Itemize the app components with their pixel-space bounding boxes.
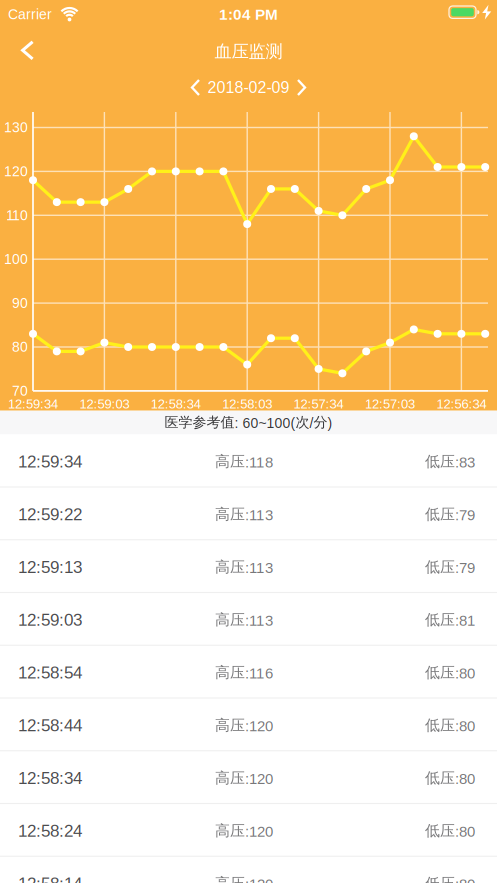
staticText: 110 [6, 207, 28, 223]
staticText: 1:04 PM [219, 6, 278, 23]
staticText: 高压:116 [215, 663, 273, 682]
staticText: 12:56:34 [436, 397, 486, 411]
staticText: 2018-02-09 [207, 79, 289, 96]
staticText: 低压:80 [425, 821, 475, 840]
staticText: 高压:120 [215, 769, 273, 787]
staticText: 低压:79 [425, 505, 475, 524]
staticText: Carrier [8, 7, 52, 22]
staticText: 医学参考值: 60~100(次/分) [164, 413, 332, 431]
staticText: 高压:113 [215, 505, 273, 524]
staticText: 12:59:34 [18, 452, 82, 471]
staticText: 高压:113 [215, 558, 273, 576]
staticText: 12:58:24 [18, 821, 82, 840]
staticText: 低压:80 [425, 716, 475, 735]
staticText: 低压:80 [425, 663, 475, 682]
staticText: 12:58:44 [18, 716, 82, 735]
staticText: 12:58:14 [18, 874, 82, 883]
staticText: 12:58:34 [18, 768, 82, 788]
staticText: 12:59:13 [18, 557, 82, 577]
staticText: 12:58:03 [222, 397, 272, 411]
staticText: 高压:120 [215, 821, 273, 840]
staticText: 70 [12, 383, 28, 399]
staticText: 低压:81 [425, 610, 475, 629]
staticText: 12:57:34 [294, 397, 344, 411]
staticText: 高压:118 [215, 452, 273, 471]
staticText: 高压:120 [215, 874, 273, 883]
staticText: 12:59:03 [79, 397, 129, 411]
staticText: 低压:80 [425, 874, 475, 883]
staticText: 100 [4, 251, 28, 267]
staticText: 12:59:22 [18, 505, 82, 524]
staticText: 低压:79 [425, 558, 475, 576]
staticText: 高压:113 [215, 610, 273, 629]
staticText: 12:58:54 [18, 663, 82, 682]
staticText: 12:58:34 [151, 397, 201, 411]
staticText: 90 [12, 295, 28, 311]
staticText: 高压:120 [215, 716, 273, 735]
staticText: 低压:80 [425, 769, 475, 787]
staticText: 12:59:34 [8, 397, 58, 411]
staticText: 12:57:03 [365, 397, 415, 411]
staticText: 12:59:03 [18, 610, 82, 629]
staticText: 120 [4, 164, 28, 179]
staticText: 80 [12, 339, 28, 355]
staticText: 血压监测 [214, 41, 282, 62]
staticText: 低压:83 [425, 452, 475, 471]
staticText: 130 [4, 120, 28, 135]
